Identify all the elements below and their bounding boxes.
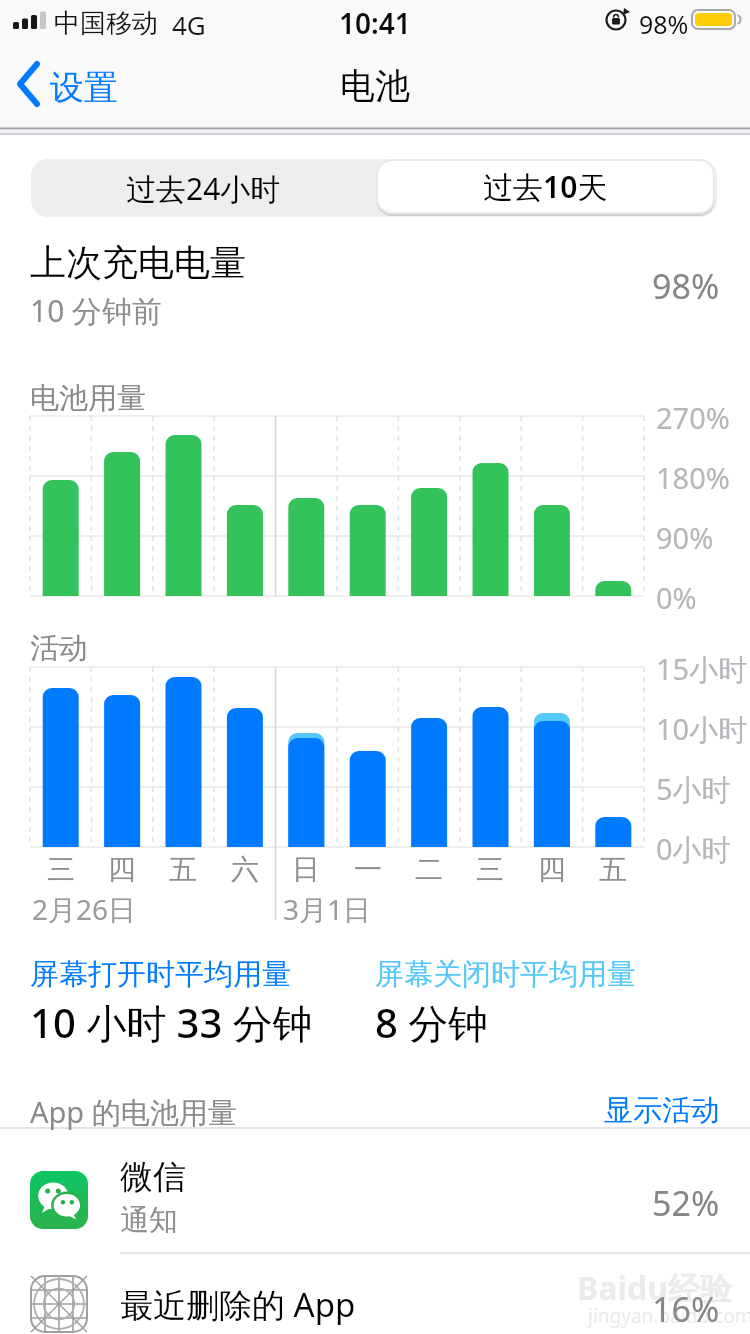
staticText: Baidu经验 <box>577 1266 733 1310</box>
staticText: 设置 <box>50 66 118 109</box>
staticText: 活动 <box>30 630 88 667</box>
staticText: 0小时 <box>656 829 731 869</box>
staticText: 五 <box>169 852 197 886</box>
button[interactable]: 过去24小时 <box>31 159 376 217</box>
staticText: 微信 <box>120 1156 186 1198</box>
staticText: 10小时 <box>656 709 748 749</box>
staticText: 屏幕打开时平均用量 <box>30 956 291 993</box>
staticText: 最近删除的 App <box>120 1282 356 1327</box>
staticText: 52% <box>652 1180 720 1226</box>
staticText: 四 <box>538 852 566 886</box>
button[interactable]: 最近删除的 App <box>0 1253 750 1334</box>
staticText: 三 <box>47 852 75 886</box>
staticText: 10 小时 33 分钟 <box>30 995 313 1050</box>
staticText: 二 <box>415 852 443 886</box>
staticText: 270% <box>656 398 730 437</box>
staticText: 通知 <box>120 1202 178 1239</box>
staticText: 98% <box>639 7 689 41</box>
staticText: 16% <box>652 1286 720 1332</box>
button[interactable]: 显示活动 <box>604 1092 720 1129</box>
staticText: 日 <box>292 852 320 886</box>
staticText: 10 分钟前 <box>30 290 163 331</box>
staticText: 98% <box>652 263 720 309</box>
staticText: 过去24小时 <box>126 168 281 209</box>
staticText: 六 <box>231 852 259 886</box>
staticText: 90% <box>656 518 714 557</box>
staticText: 电池 <box>340 64 410 108</box>
staticText: 3月1日 <box>283 890 372 928</box>
staticText: 电池用量 <box>30 380 146 417</box>
staticText: 五 <box>599 852 627 886</box>
staticText: 屏幕关闭时平均用量 <box>375 956 636 993</box>
button[interactable]: 过去10天 <box>376 159 715 214</box>
staticText: 15小时 <box>656 649 748 689</box>
staticText: 4G <box>172 7 206 42</box>
staticText: 中国移动 <box>54 7 158 40</box>
staticText: 三 <box>476 852 504 886</box>
staticText: 上次充电电量 <box>30 240 246 285</box>
button[interactable]: 微信 <box>0 1130 750 1253</box>
staticText: jingyan.baidu.com <box>588 1303 750 1329</box>
staticText: 四 <box>108 852 136 886</box>
staticText: 5小时 <box>656 769 731 809</box>
staticText: 180% <box>656 458 730 497</box>
staticText: 0% <box>656 578 697 617</box>
staticText: 8 分钟 <box>375 995 489 1050</box>
staticText: 一 <box>354 852 382 886</box>
staticText: 过去10天 <box>483 166 608 207</box>
staticText: 2月26日 <box>32 890 137 928</box>
button[interactable]: 设置 <box>14 58 134 114</box>
staticText: App 的电池用量 <box>30 1092 237 1132</box>
staticText: 10:41 <box>339 4 411 36</box>
